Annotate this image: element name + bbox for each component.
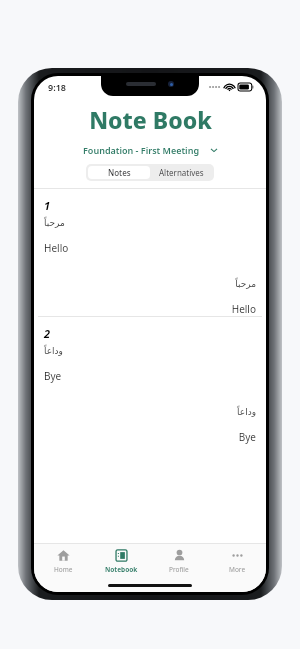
staticText: وداعاً: [44, 346, 63, 356]
button[interactable]: Profile: [150, 544, 208, 578]
staticText: Hello: [44, 241, 69, 255]
button[interactable]: Alternatives: [150, 166, 212, 179]
button[interactable]: More: [208, 544, 266, 578]
staticText: 2: [44, 326, 51, 341]
button[interactable]: 2: [34, 317, 266, 444]
staticText: 1: [44, 198, 51, 213]
staticText: Notebook: [105, 565, 138, 574]
staticText: مرحباً: [44, 218, 65, 228]
staticText: Home: [54, 565, 73, 574]
staticText: Alternatives: [159, 167, 204, 178]
staticText: مرحباً: [44, 279, 256, 289]
staticText: Foundation - First Meeting: [83, 144, 200, 156]
button[interactable]: Foundation - First Meeting: [77, 142, 224, 158]
staticText: Bye: [44, 430, 256, 444]
staticText: Note Book: [89, 104, 212, 135]
button[interactable]: Notebook: [92, 544, 150, 578]
staticText: Bye: [44, 369, 62, 383]
staticText: More: [229, 565, 246, 574]
staticText: Hello: [44, 302, 256, 316]
button[interactable]: Notes: [88, 166, 150, 179]
button[interactable]: 1: [34, 189, 266, 316]
staticText: 9:18: [48, 81, 66, 93]
staticText: Notes: [108, 167, 131, 178]
button[interactable]: Home: [34, 544, 92, 578]
staticText: Profile: [169, 565, 189, 574]
staticText: وداعاً: [44, 407, 256, 417]
